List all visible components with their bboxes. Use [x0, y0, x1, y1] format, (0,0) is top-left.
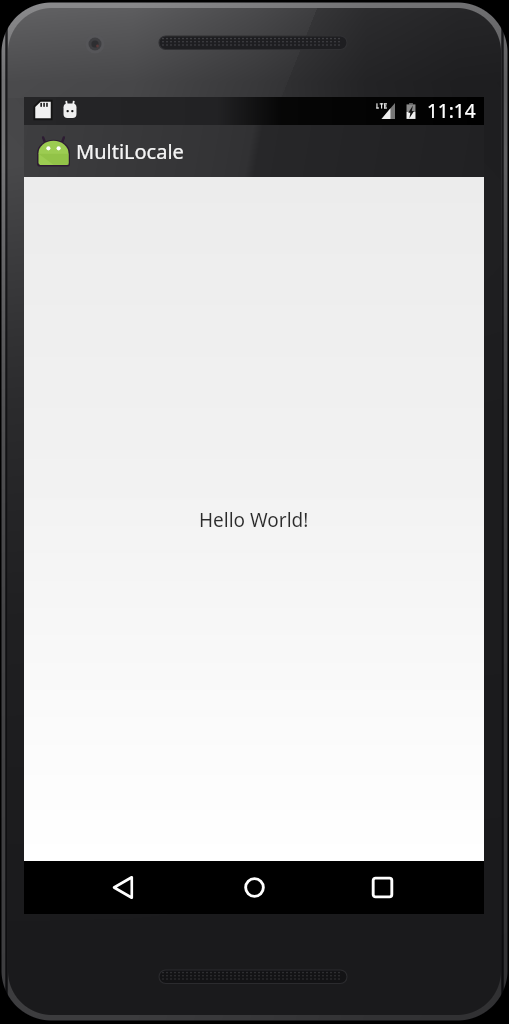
staticText: 11:14 [427, 98, 476, 124]
button[interactable]: Back [94, 861, 152, 914]
button[interactable]: Home [225, 861, 283, 914]
button[interactable]: Recents [353, 861, 411, 914]
staticText: MultiLocale [76, 138, 184, 165]
staticText: Hello World! [199, 507, 309, 533]
button[interactable]: MultiLocale [24, 125, 484, 177]
